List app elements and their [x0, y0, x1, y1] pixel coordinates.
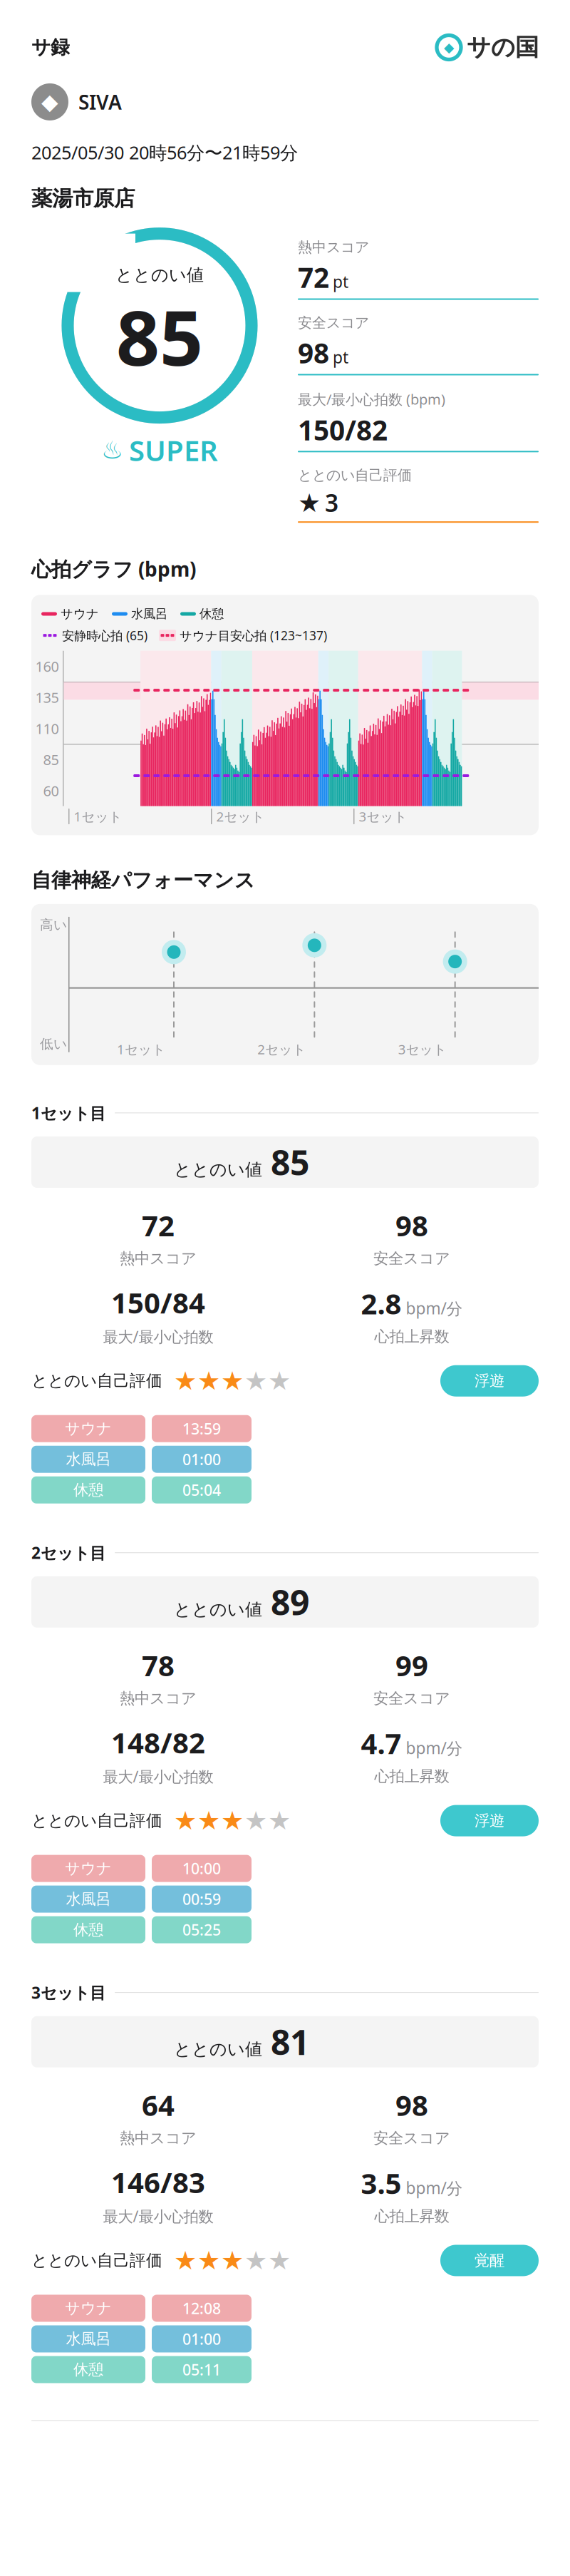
- staticText: サウナ: [65, 1859, 112, 1878]
- staticText: 安全スコア: [373, 1249, 450, 1268]
- staticText: 10:00: [182, 1858, 221, 1878]
- staticText: サ録: [31, 36, 70, 59]
- staticText: ととのい値: [174, 1599, 262, 1620]
- staticText: 60: [43, 781, 59, 800]
- staticText: サウナ: [65, 1419, 112, 1438]
- staticText: 高い: [40, 917, 67, 933]
- staticText: 休憩: [73, 2360, 103, 2379]
- staticText: ◆: [444, 40, 454, 55]
- staticText: 熱中スコア: [120, 2129, 197, 2147]
- staticText: 3セット: [398, 1040, 447, 1058]
- staticText: 覚醒: [475, 2251, 504, 2270]
- staticText: ★: [174, 1366, 197, 1395]
- staticText: 水風呂: [66, 1450, 111, 1469]
- button[interactable]: 浮遊: [440, 1365, 539, 1397]
- staticText: 85: [43, 750, 59, 769]
- staticText: 水風呂: [66, 1890, 111, 1908]
- staticText: 72: [142, 1206, 175, 1244]
- staticText: bpm/分: [406, 1737, 463, 1759]
- staticText: 05:04: [182, 1480, 221, 1500]
- staticText: ★: [268, 1806, 291, 1835]
- staticText: 熱中スコア: [120, 1249, 197, 1268]
- staticText: 心拍上昇数: [374, 1327, 449, 1346]
- staticText: 3.5: [361, 2164, 401, 2202]
- staticText: サウナ目安心拍 (123~137): [180, 627, 327, 644]
- staticText: 12:08: [182, 2298, 221, 2318]
- staticText: ととのい自己評価: [31, 2251, 162, 2270]
- staticText: 01:00: [182, 2329, 221, 2349]
- staticText: サの国: [467, 33, 539, 62]
- staticText: 安静時心拍 (65): [62, 627, 147, 644]
- staticText: 135: [35, 688, 59, 707]
- staticText: 99: [395, 1646, 428, 1684]
- staticText: 最大/最小心拍数: [103, 2206, 213, 2226]
- staticText: ★: [268, 1366, 291, 1395]
- staticText: SUPER: [129, 431, 218, 469]
- staticText: 休憩: [199, 606, 224, 622]
- staticText: 146/83: [111, 2163, 205, 2201]
- staticText: pt: [333, 346, 348, 368]
- staticText: 150/84: [111, 1284, 205, 1321]
- staticText: 98: [395, 2086, 428, 2124]
- staticText: 熱中スコア: [298, 239, 369, 256]
- staticText: 1セット: [74, 808, 122, 825]
- staticText: ★: [221, 1366, 244, 1395]
- staticText: ◆: [41, 89, 58, 114]
- staticText: 05:11: [182, 2359, 221, 2380]
- staticText: ととのい自己評価: [298, 467, 412, 484]
- staticText: 2セット: [257, 1040, 306, 1058]
- staticText: 水風呂: [131, 606, 167, 622]
- staticText: 最大/最小心拍数 (bpm): [298, 390, 445, 409]
- staticText: 薬湯市原店: [31, 186, 135, 211]
- staticText: 2セット目: [31, 1542, 106, 1563]
- staticText: ★: [298, 488, 321, 518]
- staticText: ★: [197, 1806, 220, 1835]
- staticText: 98: [395, 1206, 428, 1244]
- staticText: 72: [298, 259, 329, 296]
- staticText: 150/82: [298, 411, 388, 448]
- staticText: pt: [333, 271, 348, 292]
- staticText: 98: [298, 334, 329, 371]
- staticText: ★: [174, 2246, 197, 2275]
- staticText: 1セット目: [31, 1102, 106, 1124]
- staticText: 13:59: [182, 1419, 221, 1439]
- staticText: ★: [268, 2246, 291, 2275]
- staticText: ととのい自己評価: [31, 1811, 162, 1831]
- staticText: 01:00: [182, 1449, 221, 1469]
- staticText: ととのい値: [174, 1159, 262, 1180]
- staticText: 心拍グラフ (bpm): [31, 556, 196, 582]
- staticText: 148/82: [111, 1723, 205, 1761]
- staticText: 1セット: [117, 1040, 165, 1058]
- staticText: 3セット目: [31, 1982, 106, 2003]
- staticText: bpm/分: [406, 2177, 463, 2198]
- button[interactable]: 覚醒: [440, 2245, 539, 2276]
- staticText: 2セット: [216, 808, 265, 825]
- staticText: 78: [142, 1646, 175, 1684]
- staticText: 心拍上昇数: [374, 2207, 449, 2225]
- staticText: ★: [197, 2246, 220, 2275]
- staticText: 休憩: [73, 1920, 103, 1939]
- staticText: 最大/最小心拍数: [103, 1766, 213, 1786]
- staticText: 浮遊: [475, 1371, 504, 1390]
- staticText: 00:59: [182, 1889, 221, 1909]
- staticText: 安全スコア: [298, 314, 369, 332]
- staticText: 05:25: [182, 1920, 221, 1940]
- staticText: bpm/分: [406, 1297, 463, 1319]
- staticText: 低い: [40, 1036, 67, 1052]
- staticText: 心拍上昇数: [374, 1767, 449, 1786]
- staticText: 自律神経パフォーマンス: [31, 868, 255, 893]
- staticText: 85: [116, 286, 203, 387]
- staticText: 2025/05/30 20時56分〜21時59分: [31, 140, 298, 164]
- staticText: 浮遊: [475, 1811, 504, 1830]
- button[interactable]: サの国: [437, 33, 539, 62]
- staticText: SIVA: [78, 89, 122, 115]
- staticText: 85: [271, 1139, 309, 1185]
- staticText: ★: [221, 2246, 244, 2275]
- staticText: ★: [244, 2246, 267, 2275]
- staticText: ♨︎: [101, 436, 123, 464]
- staticText: 81: [271, 2019, 309, 2064]
- staticText: サウナ: [61, 606, 99, 622]
- staticText: 2.8: [361, 1284, 401, 1322]
- button[interactable]: 浮遊: [440, 1805, 539, 1836]
- staticText: 3: [325, 487, 338, 518]
